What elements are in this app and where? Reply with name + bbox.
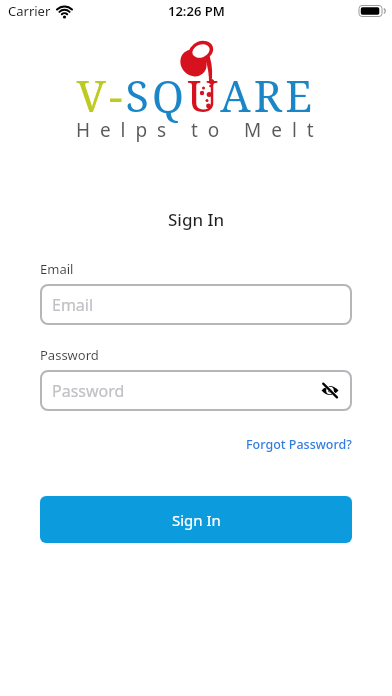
staticText: 12:26 PM [168,2,225,20]
button[interactable]: Email [40,284,352,325]
button[interactable]: Password [40,370,352,411]
button[interactable]: Forgot Password? [246,436,352,453]
staticText: Password [40,346,99,364]
staticText: Carrier [8,2,51,20]
staticText: Sign In [168,208,225,231]
staticText: V-SQUARE [0,66,392,125]
staticText: Sign In [172,510,221,530]
staticText: H e l p s t o M e l t [0,117,392,143]
staticText: Email [40,260,74,278]
button[interactable]: Sign In [40,496,352,543]
staticText: Password [52,380,125,402]
staticText: Email [52,294,94,316]
